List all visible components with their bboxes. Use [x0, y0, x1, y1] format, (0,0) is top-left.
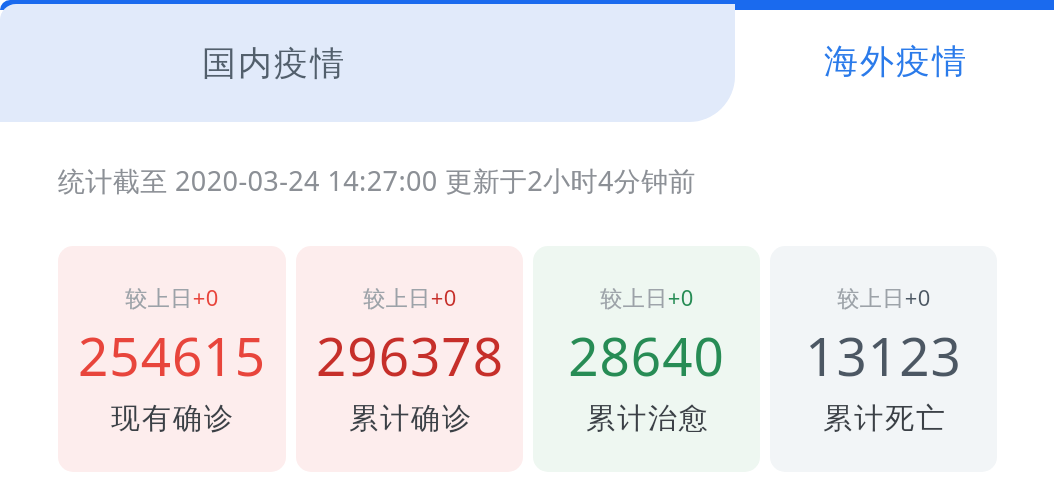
staticText: 28640 — [568, 319, 725, 391]
staticText: 296378 — [316, 319, 504, 391]
button[interactable]: 较上日+0 — [296, 246, 523, 472]
button[interactable]: 较上日+0 — [770, 246, 997, 472]
button[interactable]: 海外疫情 — [735, 0, 1054, 122]
staticText: 国内疫情 — [201, 42, 345, 85]
staticText: 统计截至 2020-03-24 14:27:00 更新于2小时4分钟前 — [58, 162, 697, 199]
staticText: 现有确诊 — [110, 400, 234, 437]
staticText: 累计治愈 — [585, 400, 709, 437]
staticText: 较上日+0 — [125, 282, 219, 312]
staticText: 13123 — [805, 319, 962, 391]
button[interactable]: 较上日+0 — [58, 246, 286, 472]
staticText: 累计确诊 — [348, 400, 472, 437]
staticText: 累计死亡 — [822, 400, 946, 437]
staticText: 较上日+0 — [600, 282, 694, 312]
staticText: 较上日+0 — [837, 282, 931, 312]
button[interactable]: 较上日+0 — [533, 246, 760, 472]
staticText: 较上日+0 — [363, 282, 457, 312]
staticText: 254615 — [78, 319, 266, 391]
button[interactable]: 国内疫情 — [0, 4, 735, 122]
staticText: 海外疫情 — [823, 40, 967, 83]
